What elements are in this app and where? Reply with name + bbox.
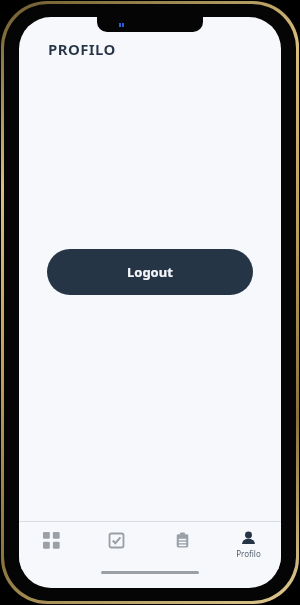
button[interactable]: Profilo xyxy=(215,522,281,570)
staticText: Logout xyxy=(127,263,173,281)
button[interactable]: Logout xyxy=(47,249,253,295)
button[interactable]: Reports xyxy=(149,522,215,570)
staticText: Profilo xyxy=(236,548,261,559)
staticText: PROFILO xyxy=(48,39,116,59)
button[interactable]: Tasks xyxy=(84,522,149,570)
button[interactable]: Dashboard xyxy=(19,522,84,570)
